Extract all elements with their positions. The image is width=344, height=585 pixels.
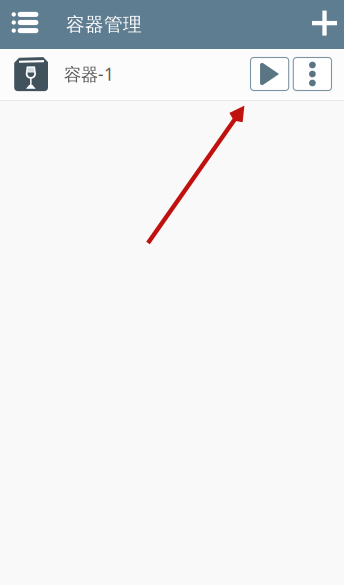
button[interactable]: More options — [293, 57, 331, 90]
button[interactable]: Add — [305, 0, 344, 49]
button[interactable]: Start container — [250, 57, 289, 90]
button[interactable]: Menu — [0, 0, 50, 49]
staticText: 容器管理 — [66, 13, 142, 36]
button[interactable]: 容器-1 — [0, 49, 344, 99]
staticText: 容器-1 — [64, 62, 114, 85]
